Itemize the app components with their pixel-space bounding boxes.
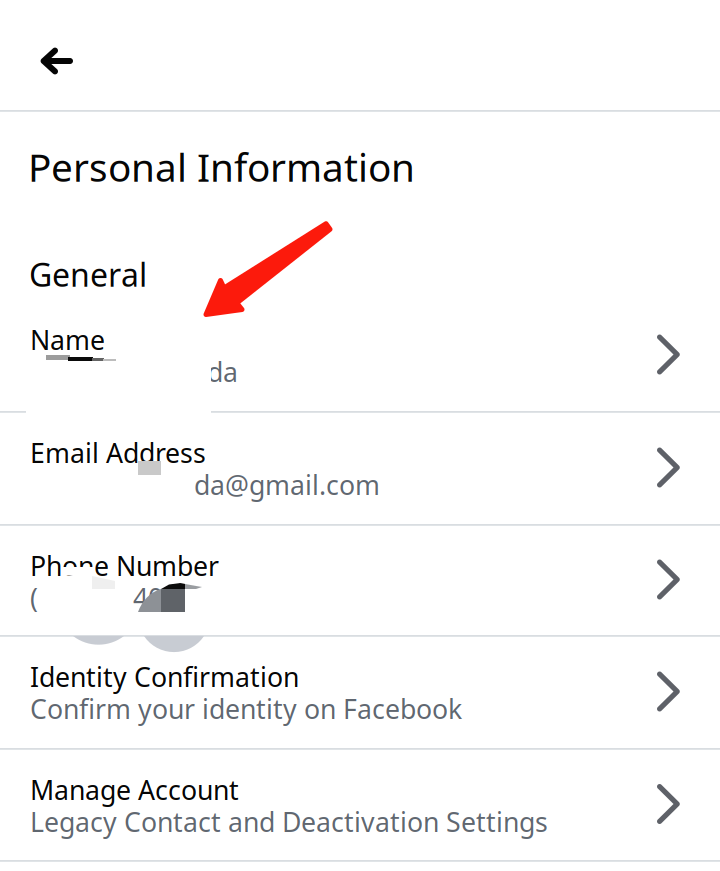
staticText: ( bbox=[30, 580, 38, 615]
staticText: da bbox=[207, 354, 238, 389]
button[interactable]: Phone Number bbox=[0, 524, 720, 635]
staticText: Email Address bbox=[30, 435, 206, 470]
staticText: Confirm your identity on Facebook bbox=[30, 691, 462, 726]
button[interactable]: Email Address bbox=[0, 411, 720, 524]
staticText: General bbox=[29, 253, 147, 295]
staticText: Name bbox=[30, 322, 105, 357]
staticText: Phone Number bbox=[30, 548, 219, 583]
button[interactable]: Identity Confirmation bbox=[0, 635, 720, 748]
button[interactable]: Name bbox=[0, 298, 720, 411]
staticText: Manage Account bbox=[30, 772, 239, 807]
staticText: Personal Information bbox=[28, 141, 415, 192]
button[interactable]: Back bbox=[0, 0, 112, 110]
staticText: da@gmail.com bbox=[194, 467, 380, 502]
staticText: Identity Confirmation bbox=[30, 659, 299, 694]
staticText: 40 bbox=[133, 580, 163, 615]
staticText: Legacy Contact and Deactivation Settings bbox=[30, 804, 548, 839]
button[interactable]: Manage Account bbox=[0, 748, 720, 860]
